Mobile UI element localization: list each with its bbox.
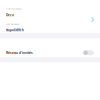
staticText: Réseau d'invités xyxy=(6,51,33,55)
button[interactable]: Réseau d'invités xyxy=(0,38,100,57)
staticText: Nom du réseau xyxy=(6,7,21,10)
button[interactable]: Nom du réseau xyxy=(0,3,100,33)
staticText: Mot de passe xyxy=(6,22,19,25)
staticText: Deco xyxy=(6,13,14,17)
staticText: ttupolit0fch xyxy=(6,28,24,32)
